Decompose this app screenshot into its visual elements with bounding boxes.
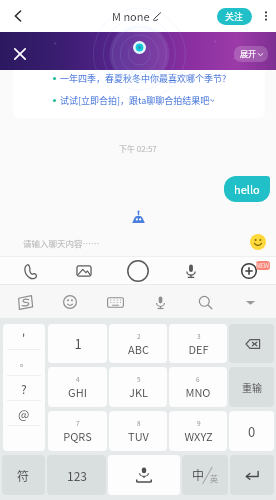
button[interactable]: Space / voice input: [108, 455, 180, 495]
staticText: NEW: [256, 261, 270, 270]
staticText: GHI: [68, 384, 87, 400]
button[interactable]: 。: [3, 350, 45, 376]
button[interactable]: 符: [2, 455, 45, 495]
staticText: 英: [210, 473, 218, 485]
staticText: WXYZ: [184, 428, 213, 444]
button[interactable]: hello: [224, 176, 270, 202]
button[interactable]: Keyboard layout: [103, 290, 127, 314]
staticText: 4: [76, 374, 80, 383]
button[interactable]: Emoji: [250, 234, 266, 250]
staticText: 6: [196, 374, 200, 383]
staticText: 3: [197, 331, 201, 340]
button[interactable]: 2: [109, 324, 167, 363]
button[interactable]: Voice input: [148, 290, 172, 314]
button[interactable]: 8: [109, 411, 167, 451]
button[interactable]: 3: [169, 324, 227, 363]
staticText: 9: [197, 418, 201, 427]
staticText: ': [22, 329, 26, 346]
staticText: ?: [21, 380, 27, 397]
button[interactable]: 1: [48, 324, 107, 363]
staticText: 符: [17, 467, 30, 484]
button[interactable]: Backspace: [229, 324, 274, 363]
button[interactable]: Add: [232, 258, 258, 284]
staticText: 1: [74, 334, 82, 353]
button[interactable]: 9: [169, 411, 227, 451]
button[interactable]: Sogou input: [13, 290, 37, 314]
staticText: 7: [76, 418, 80, 427]
staticText: ABC: [128, 341, 149, 357]
button[interactable]: Call: [17, 258, 43, 284]
staticText: DEF: [188, 341, 209, 357]
button[interactable]: Close banner: [13, 47, 27, 61]
button[interactable]: ?: [3, 376, 45, 401]
staticText: 试试[立即合拍]，跟ta聊聊合拍结果吧~: [60, 94, 215, 107]
button[interactable]: 重输: [229, 367, 274, 407]
button[interactable]: 7: [48, 411, 107, 451]
button[interactable]: 5: [109, 367, 167, 407]
staticText: 123: [67, 467, 87, 484]
button[interactable]: 123: [47, 455, 106, 495]
button[interactable]: Search: [193, 290, 217, 314]
button[interactable]: 一年四季，春夏秋冬中你最喜欢哪个季节?: [13, 56, 265, 118]
staticText: TUV: [128, 428, 149, 444]
button[interactable]: Photo: [71, 258, 97, 284]
button[interactable]: 展开: [234, 46, 268, 62]
staticText: 中: [192, 466, 205, 483]
button[interactable]: Back: [6, 4, 30, 28]
button[interactable]: Voice message: [125, 258, 151, 284]
staticText: 0: [248, 422, 256, 441]
button[interactable]: 关注: [217, 8, 252, 25]
button[interactable]: Enter: [230, 455, 274, 495]
staticText: 下午 02:57: [119, 143, 157, 155]
staticText: 8: [137, 418, 141, 427]
button[interactable]: @: [3, 401, 45, 426]
staticText: 展开: [240, 48, 256, 60]
button[interactable]: 0: [229, 411, 274, 451]
staticText: M none: [112, 8, 150, 24]
button[interactable]: Microphone: [178, 258, 204, 284]
staticText: 重输: [242, 380, 262, 394]
button[interactable]: Emoticons: [58, 290, 82, 314]
staticText: hello: [234, 181, 260, 197]
staticText: 5: [137, 374, 141, 383]
staticText: 。: [20, 357, 28, 369]
staticText: 2: [137, 331, 141, 340]
staticText: @: [18, 405, 30, 422]
staticText: 请输入聊天内容……: [23, 237, 100, 249]
staticText: PQRS: [63, 428, 92, 444]
staticText: 一年四季，春夏秋冬中你最喜欢哪个季节?: [60, 72, 227, 85]
button[interactable]: ': [3, 324, 45, 350]
staticText: 关注: [225, 10, 244, 23]
button[interactable]: More options: [256, 0, 276, 32]
staticText: JKL: [129, 384, 148, 400]
button[interactable]: Collapse keyboard: [238, 290, 262, 314]
button[interactable]: 6: [169, 367, 227, 407]
staticText: MNO: [185, 384, 211, 400]
button[interactable]: 中: [182, 455, 228, 495]
button[interactable]: 4: [48, 367, 107, 407]
